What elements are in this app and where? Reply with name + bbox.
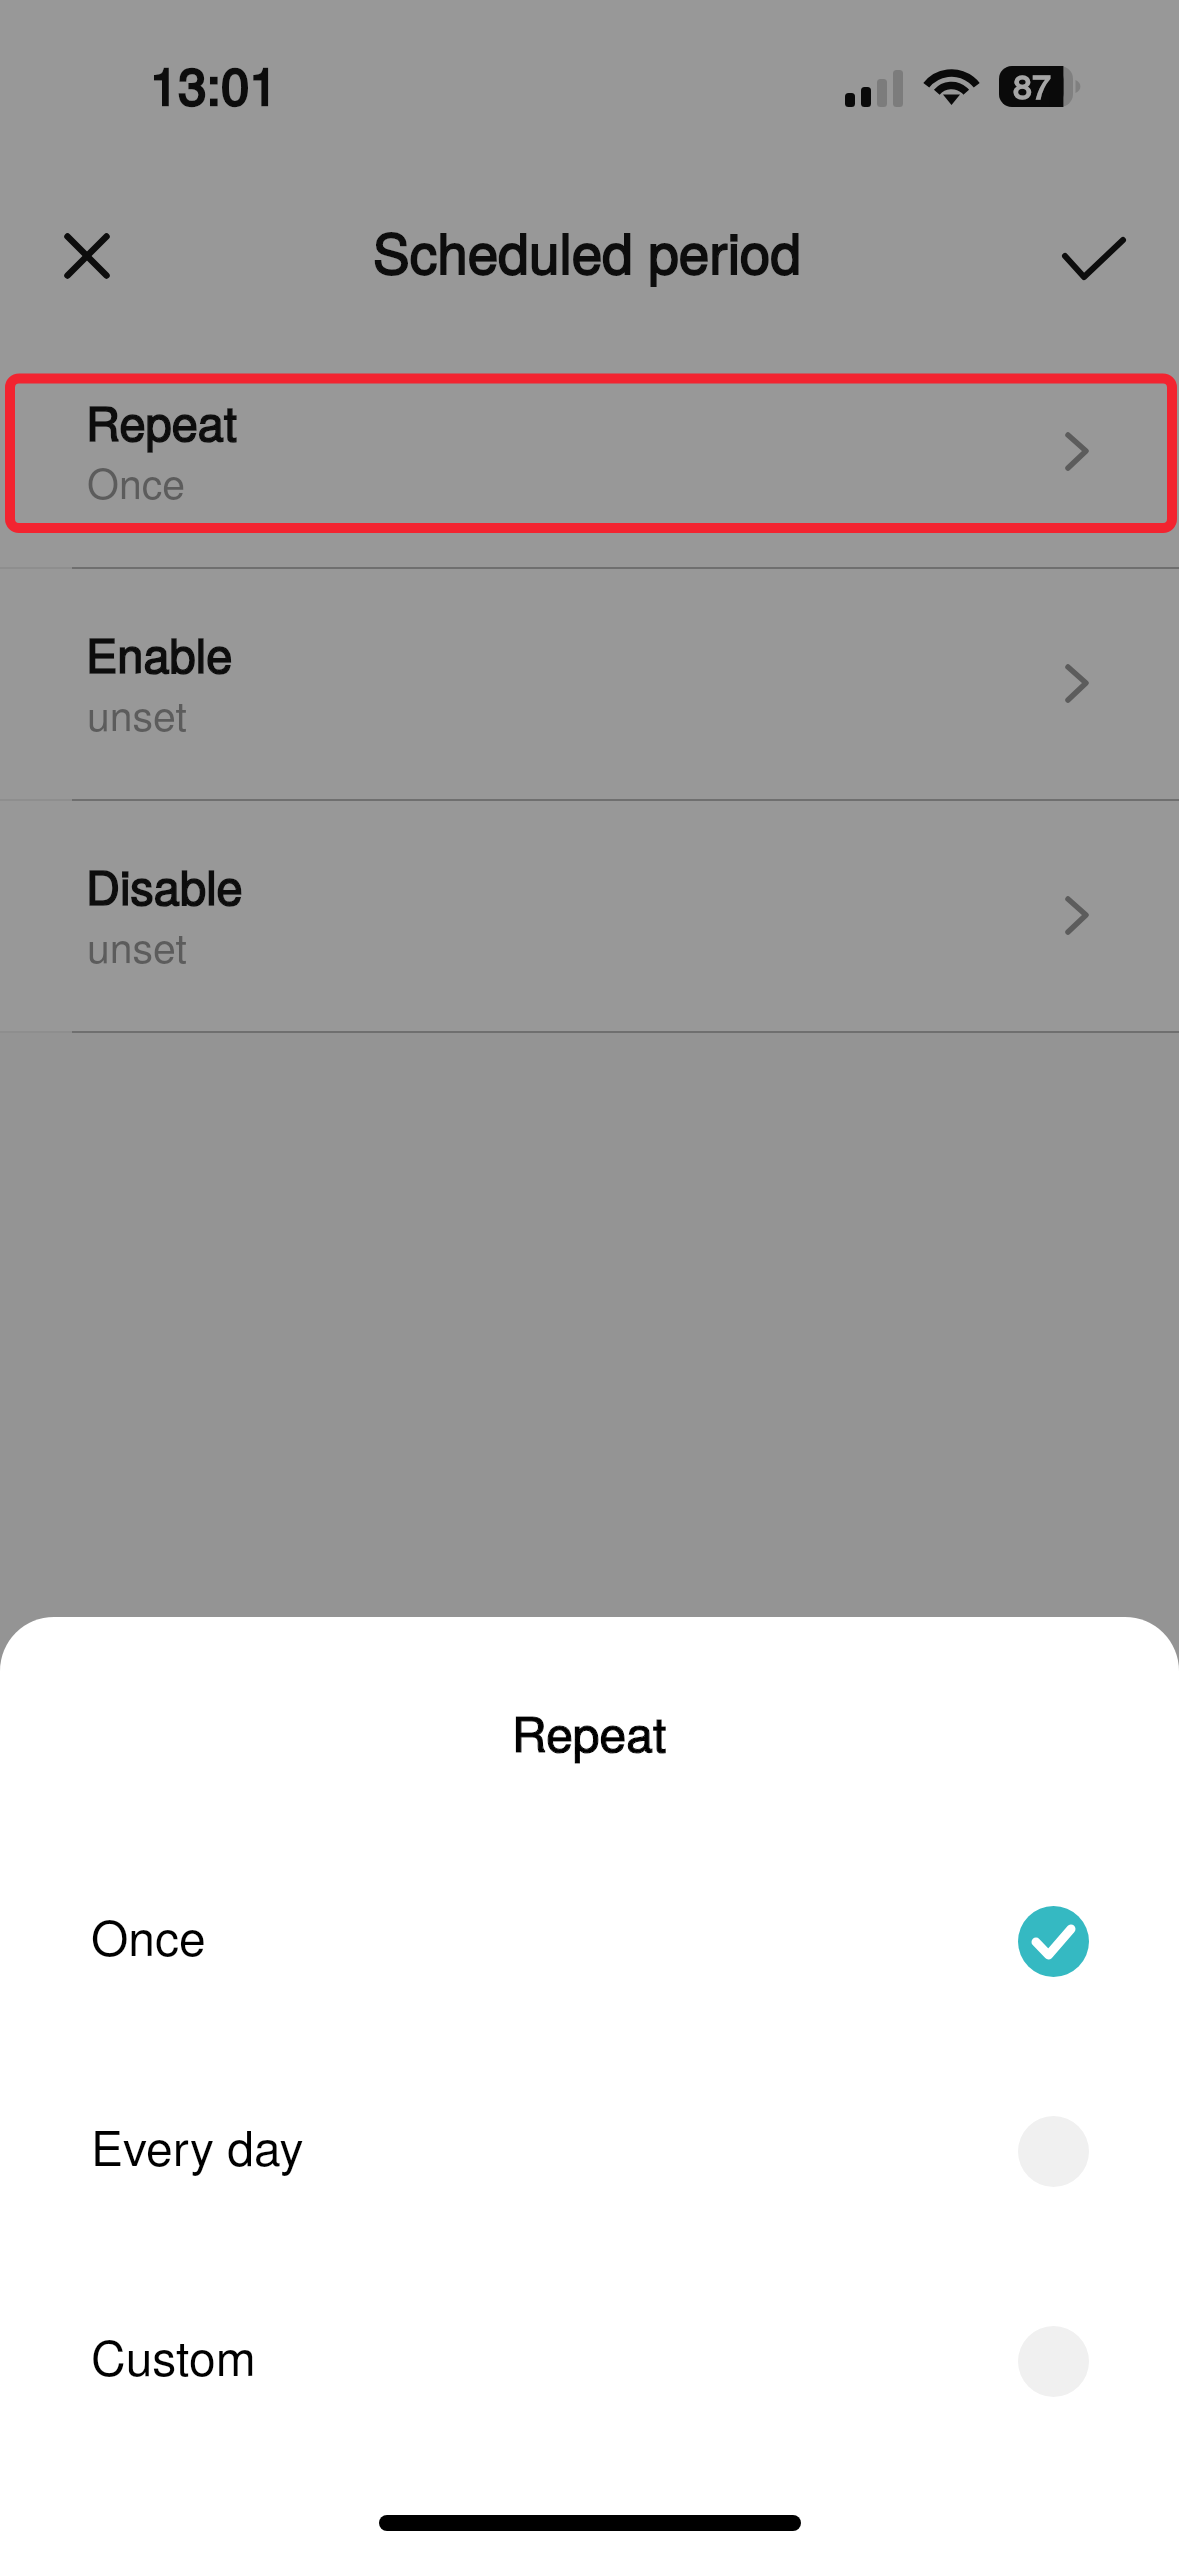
button[interactable]: Once [0, 1836, 1179, 2046]
staticText: 87 [1013, 60, 1051, 109]
staticText: unset [87, 916, 187, 975]
staticText: unset [87, 684, 187, 743]
button[interactable]: Repeat [0, 335, 1179, 567]
other: Wi-Fi [916, 58, 988, 110]
staticText: Every day [91, 2111, 304, 2180]
button[interactable]: Every day [0, 2046, 1179, 2256]
staticText: Custom [91, 2321, 256, 2390]
other: Cellular signal [845, 69, 905, 107]
staticText: Scheduled period [373, 211, 802, 290]
staticText: Once [87, 452, 185, 511]
staticText: Disable [86, 851, 243, 918]
staticText: 87 [1013, 60, 1051, 109]
staticText: Once [91, 1901, 206, 1970]
staticText: Repeat [86, 387, 238, 454]
staticText: Repeat [512, 1697, 667, 1766]
other: Battery 87 percent [997, 64, 1087, 110]
staticText: 13:01 [150, 46, 278, 119]
staticText: Scheduled period [373, 211, 802, 290]
button[interactable]: Confirm [1049, 215, 1139, 301]
staticText: 13:01 [150, 46, 278, 119]
staticText: Repeat [512, 1697, 667, 1766]
staticText: Disable [86, 851, 243, 918]
staticText: Enable [86, 619, 233, 686]
button[interactable]: Disable [0, 799, 1179, 1031]
staticText: Enable [86, 619, 233, 686]
button[interactable]: Close [45, 214, 129, 298]
button[interactable]: Enable [0, 567, 1179, 799]
button[interactable]: Custom [0, 2256, 1179, 2466]
staticText: Repeat [86, 387, 238, 454]
